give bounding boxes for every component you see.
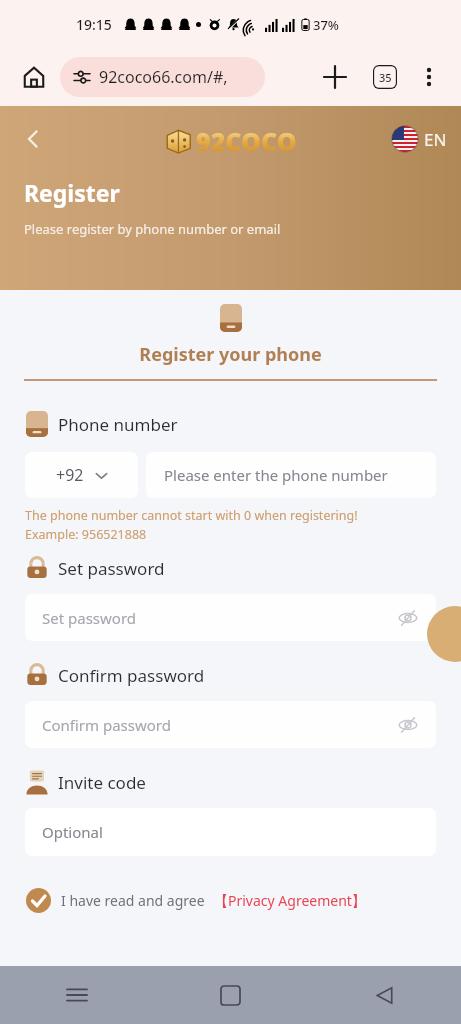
button[interactable]: Phone number [26,411,178,437]
staticText: Confirm password [42,715,171,735]
staticText: EN [424,128,447,151]
button[interactable]: +92 [25,452,138,498]
staticText: 35 [379,70,392,85]
staticText: 19:15 [76,15,112,34]
button[interactable]: Show password [396,713,420,737]
button[interactable]: Home [153,966,307,1024]
staticText: Set password [42,608,137,628]
staticText: 37% [313,16,339,34]
staticText: Please register by phone number or email [24,220,281,238]
button[interactable]: Invite code [26,769,146,795]
staticText: 【Privacy Agreement】 [214,891,366,910]
staticText: 92COCO [196,124,297,158]
staticText: Example: 956521888 [25,526,147,543]
staticText: Please enter the phone number [164,465,388,485]
button[interactable]: Set password [26,555,165,581]
button[interactable]: Recent apps [0,966,153,1024]
button[interactable]: Optional [25,808,436,856]
button[interactable]: 92coco66.com/#, [60,57,265,97]
staticText: The phone number cannot start with 0 whe… [25,507,358,524]
button[interactable]: Confirm password [25,701,436,748]
button[interactable]: New tab [315,57,355,97]
staticText: 92coco66.com/#, [99,66,228,88]
staticText: +92 [56,464,84,486]
button[interactable]: Set password [25,594,436,641]
staticText: I have read and agree [61,891,205,910]
button[interactable]: Tabs [365,57,405,97]
staticText: Optional [42,822,103,842]
staticText: Set password [58,557,165,580]
staticText: Confirm password [58,664,205,687]
staticText: Phone number [58,413,178,436]
button[interactable]: Please enter the phone number [146,452,436,498]
button[interactable]: More options [411,59,447,95]
staticText: Register [24,177,120,208]
button[interactable]: EN [392,126,447,152]
staticText: Register your phone [139,342,322,367]
button[interactable]: Show password [396,606,420,630]
button[interactable]: Confirm password [26,662,205,688]
button[interactable]: Back [307,966,461,1024]
button[interactable]: I have read and agree [26,888,435,913]
button[interactable]: Back [12,118,54,160]
button[interactable]: Home [14,57,54,97]
button[interactable]: Customer service [427,606,461,662]
staticText: Invite code [58,771,146,794]
